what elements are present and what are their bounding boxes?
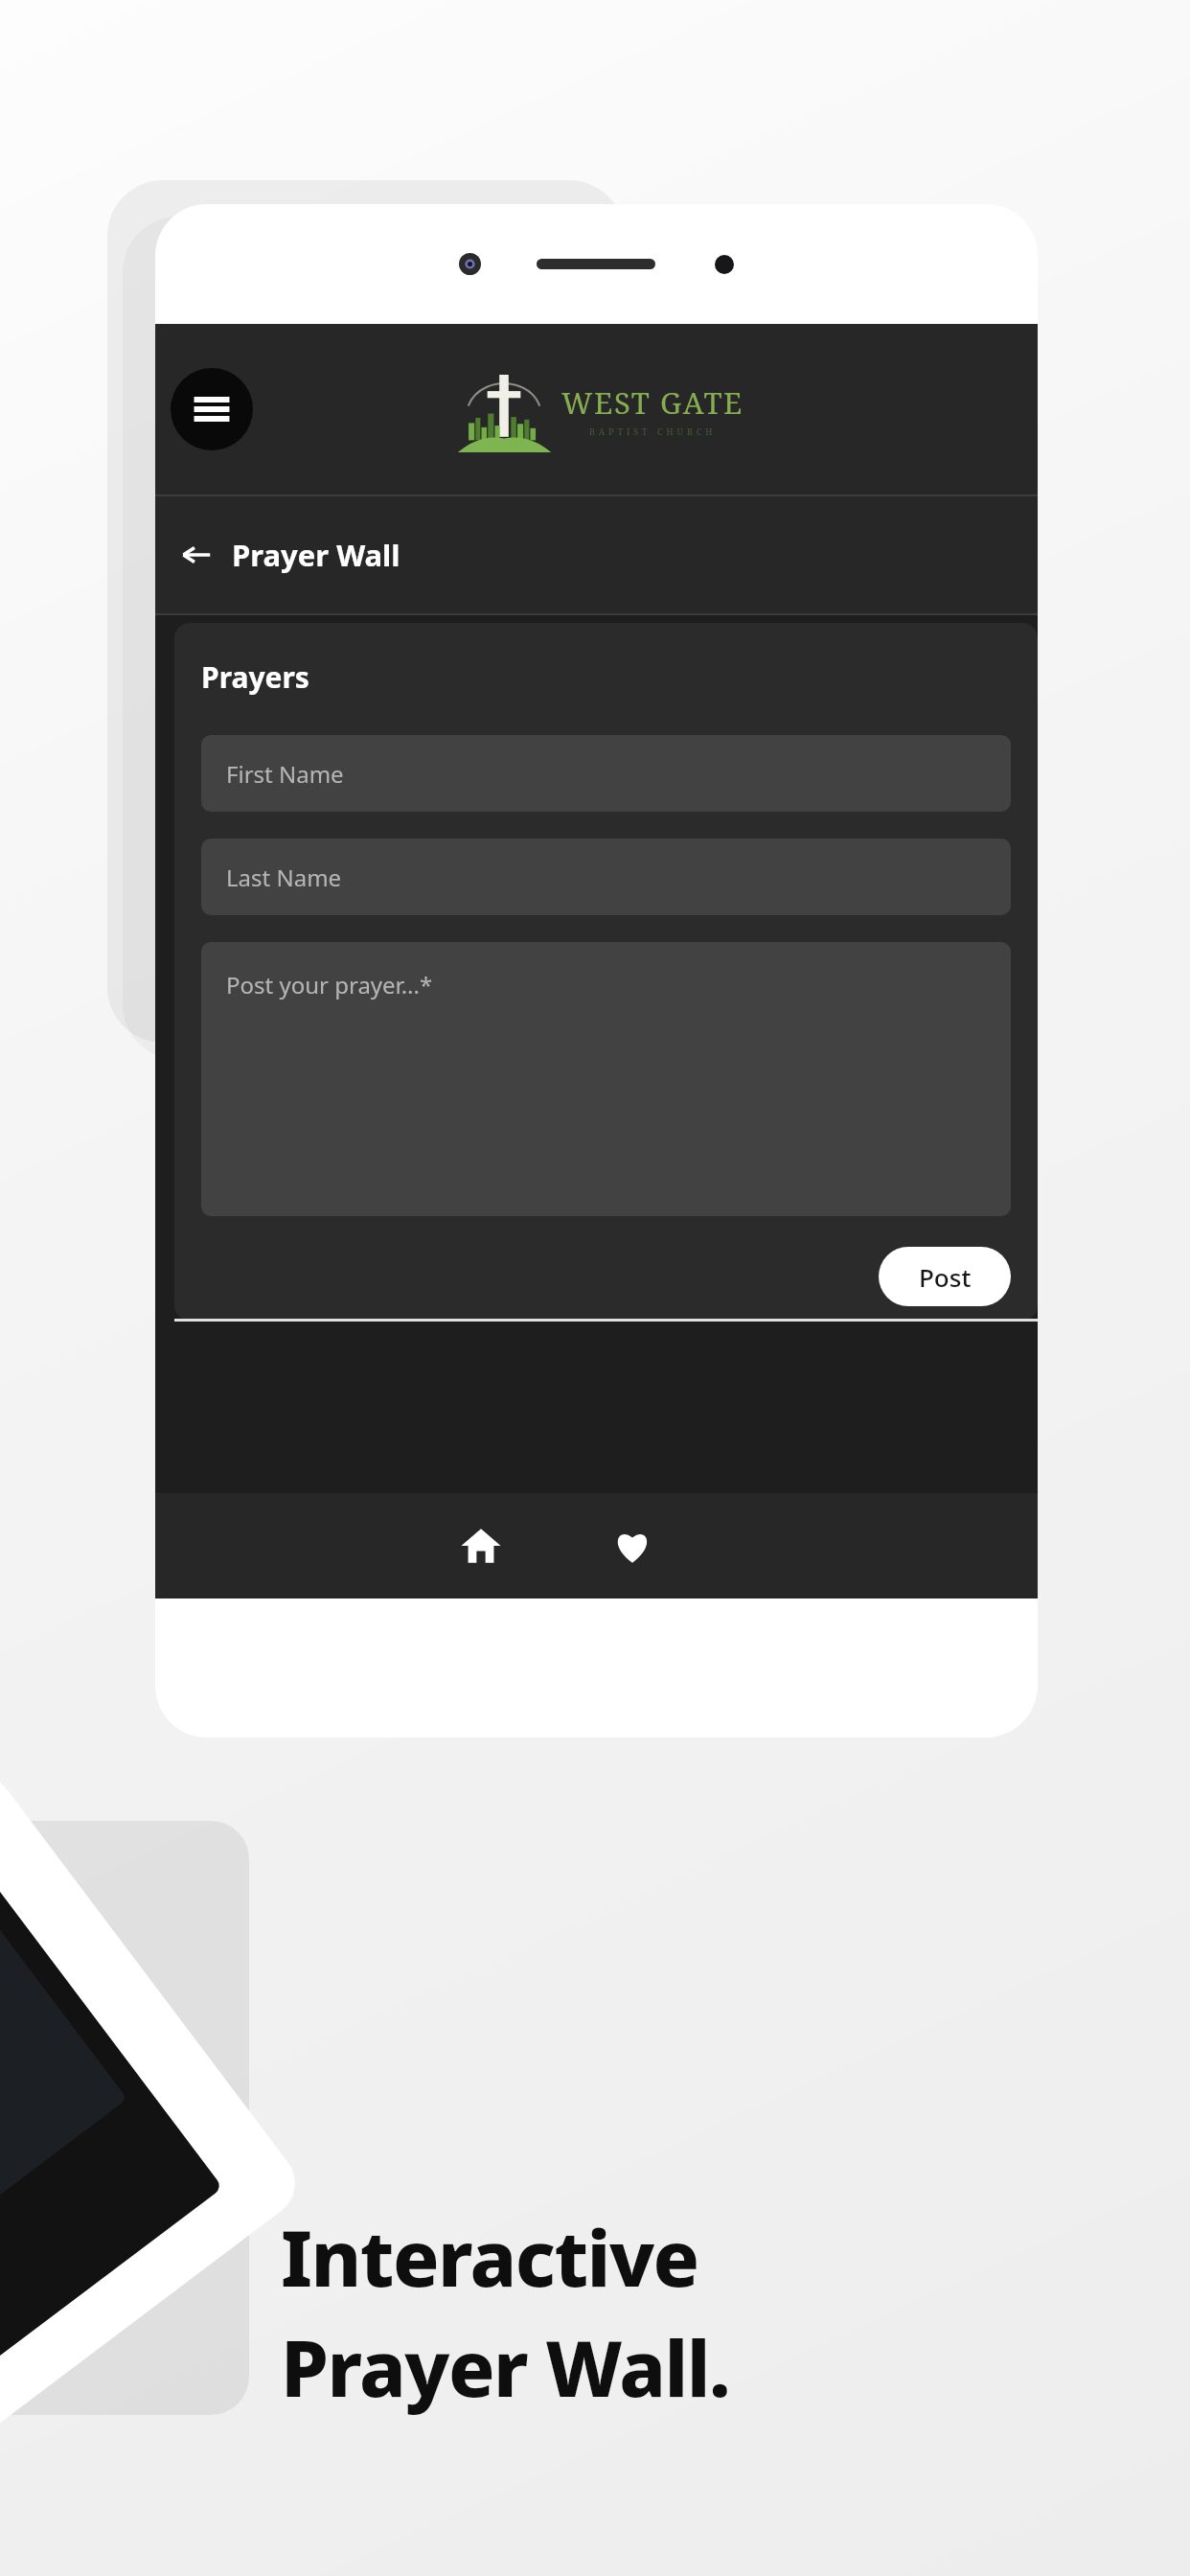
staticText: Post <box>919 1260 972 1294</box>
staticText: First Name <box>226 758 344 790</box>
staticText: Post your prayer...* <box>226 969 433 1000</box>
staticText: Prayers <box>201 657 309 697</box>
button[interactable]: First Name <box>201 735 1011 812</box>
staticText: Interactive <box>281 2204 698 2309</box>
button[interactable]: Post your prayer...* <box>201 942 1011 1216</box>
button[interactable]: Open navigation menu <box>171 368 253 450</box>
staticText: BAPTIST CHURCH <box>589 425 717 437</box>
button[interactable]: Post <box>879 1247 1011 1306</box>
staticText: Prayer Wall. <box>281 2314 730 2419</box>
button[interactable]: Home <box>435 1500 527 1592</box>
button[interactable]: Last Name <box>201 839 1011 915</box>
button[interactable]: Prayer Wall <box>155 496 1038 613</box>
staticText: Last Name <box>226 862 342 893</box>
button[interactable]: Favorites <box>586 1500 678 1592</box>
staticText: Prayer Wall <box>232 535 400 575</box>
staticText: WEST GATE <box>561 382 744 423</box>
